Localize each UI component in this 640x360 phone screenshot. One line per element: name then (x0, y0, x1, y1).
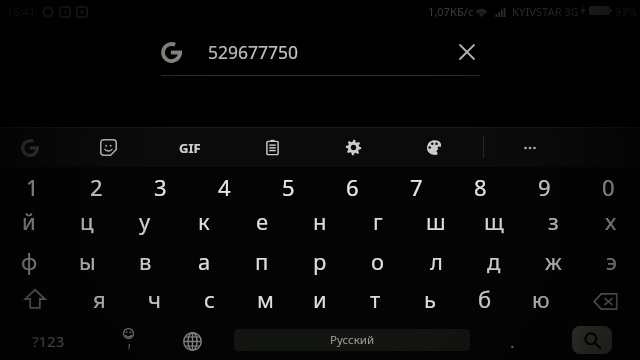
button[interactable]: 0 (576, 168, 640, 206)
button[interactable]: ч (127, 280, 181, 318)
staticText: 0 (602, 172, 615, 202)
staticText: л (430, 246, 443, 276)
staticText: 93% (615, 4, 637, 19)
staticText: ?123 (32, 331, 65, 351)
button[interactable]: Shift (6, 280, 64, 318)
button[interactable]: б (458, 280, 512, 318)
button[interactable]: 7 (384, 168, 448, 206)
staticText: 8 (474, 172, 487, 202)
staticText: р (313, 246, 327, 276)
button[interactable]: Русский (234, 329, 470, 351)
button[interactable]: Stickers (90, 128, 126, 167)
button[interactable]: ы (58, 242, 116, 280)
staticText: х (605, 206, 617, 236)
button[interactable]: н (291, 202, 349, 240)
staticText: 1,07КБ/с (428, 4, 474, 19)
staticText: Русский (330, 332, 375, 348)
staticText: н (313, 206, 327, 236)
button[interactable]: Emoji (110, 323, 146, 357)
button[interactable]: 3 (128, 168, 192, 206)
staticText: у (139, 206, 151, 236)
button[interactable]: х (582, 202, 640, 240)
staticText: д (487, 246, 501, 276)
button[interactable]: 2 (64, 168, 128, 206)
button[interactable]: е (233, 202, 291, 240)
button[interactable]: в (116, 242, 174, 280)
staticText: а (198, 246, 211, 276)
staticText: з (548, 206, 559, 236)
staticText: и (313, 284, 327, 314)
button[interactable]: л (407, 242, 465, 280)
button[interactable]: GIF (172, 128, 208, 167)
staticText: 15:41 (7, 4, 36, 19)
staticText: п (255, 246, 269, 276)
button[interactable]: Search (572, 326, 612, 354)
button[interactable]: Backspace (576, 282, 634, 320)
button[interactable]: к (175, 202, 233, 240)
staticText: 3 (154, 172, 167, 202)
staticText: в (139, 246, 152, 276)
button[interactable]: у (116, 202, 174, 240)
staticText: э (606, 246, 617, 276)
staticText: 7 (410, 172, 423, 202)
button[interactable]: Clipboard (254, 128, 290, 167)
button[interactable]: Settings (335, 128, 371, 167)
button[interactable]: Google (12, 128, 48, 167)
button[interactable]: г (349, 202, 407, 240)
button[interactable]: Clear (453, 38, 481, 66)
staticText: щ (484, 206, 504, 236)
button[interactable]: Themes (416, 128, 452, 167)
staticText: я (93, 284, 106, 314)
staticText: е (256, 206, 269, 236)
staticText: 6 (346, 172, 359, 202)
button[interactable]: Switch language (174, 326, 210, 356)
staticText: ж (545, 246, 562, 276)
staticText: к (198, 206, 210, 236)
staticText: б (478, 284, 492, 314)
staticText: 9 (538, 172, 551, 202)
button[interactable]: 8 (448, 168, 512, 206)
button[interactable]: о (349, 242, 407, 280)
staticText: ю (532, 284, 550, 314)
button[interactable]: а (175, 242, 233, 280)
button[interactable]: ?123 (20, 326, 76, 356)
button[interactable]: я (72, 280, 126, 318)
button[interactable]: д (465, 242, 523, 280)
button[interactable]: 6 (320, 168, 384, 206)
button[interactable]: 4 (192, 168, 256, 206)
staticText: ь (424, 284, 436, 314)
staticText: ш (426, 206, 446, 236)
button[interactable]: 9 (512, 168, 576, 206)
button[interactable]: ф (0, 242, 58, 280)
button[interactable]: ж (524, 242, 582, 280)
button[interactable]: и (293, 280, 347, 318)
staticText: 2 (90, 172, 103, 202)
button[interactable]: з (524, 202, 582, 240)
button[interactable]: щ (465, 202, 523, 240)
staticText: т (370, 284, 381, 314)
button[interactable]: 5 (256, 168, 320, 206)
staticText: GIF (179, 139, 201, 157)
button[interactable]: й (0, 202, 58, 240)
button[interactable]: ю (514, 280, 568, 318)
button[interactable]: т (348, 280, 402, 318)
staticText: 4 (218, 172, 231, 202)
staticText: . (510, 330, 515, 353)
button[interactable]: м (238, 280, 292, 318)
staticText: KYIVSTAR 3G (512, 4, 579, 19)
button[interactable]: . (494, 326, 530, 356)
staticText: ч (148, 284, 161, 314)
button[interactable]: р (291, 242, 349, 280)
button[interactable]: э (582, 242, 640, 280)
button[interactable]: п (233, 242, 291, 280)
button[interactable]: More options (512, 128, 548, 167)
button[interactable]: Google (157, 38, 186, 66)
button[interactable]: с (182, 280, 236, 318)
staticText: с (204, 284, 215, 314)
staticText: ц (80, 206, 94, 236)
button[interactable]: ь (403, 280, 457, 318)
button[interactable]: 1 (0, 168, 64, 206)
staticText: ы (79, 246, 96, 276)
button[interactable]: ш (407, 202, 465, 240)
button[interactable]: ц (58, 202, 116, 240)
